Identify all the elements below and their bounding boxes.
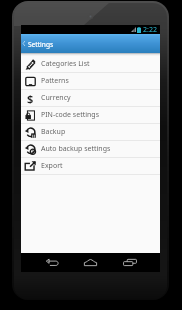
button[interactable]: Patterns bbox=[21, 73, 160, 89]
staticText: Currency bbox=[41, 93, 71, 103]
button[interactable]: Navigate up bbox=[21, 34, 27, 53]
button[interactable]: Categories List bbox=[21, 56, 160, 72]
staticText: PIN-code settings bbox=[41, 110, 99, 120]
staticText: 2:22 bbox=[143, 25, 157, 34]
button[interactable]: Recent apps bbox=[116, 253, 144, 272]
button[interactable]: Backup bbox=[21, 124, 160, 140]
staticText: Settings bbox=[28, 40, 54, 49]
button[interactable]: Home bbox=[76, 253, 104, 272]
staticText: Export bbox=[41, 161, 63, 171]
staticText: Categories List bbox=[41, 59, 90, 69]
staticText: Patterns bbox=[41, 76, 69, 86]
staticText: Auto backup settings bbox=[41, 144, 111, 154]
staticText: $ bbox=[27, 91, 34, 106]
button[interactable]: Back bbox=[38, 253, 66, 272]
button[interactable]: Export bbox=[21, 158, 160, 174]
button[interactable]: PIN-code settings bbox=[21, 107, 160, 123]
button[interactable]: Auto backup settings bbox=[21, 141, 160, 157]
staticText: Backup bbox=[41, 127, 66, 137]
button[interactable]: $ bbox=[21, 90, 160, 106]
